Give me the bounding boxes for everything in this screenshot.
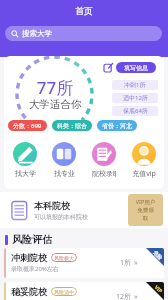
button[interactable]: 找专业 <box>52 142 76 178</box>
button[interactable]: 科类：综合 <box>52 120 92 131</box>
button[interactable]: 稳妥院校 <box>4 282 164 300</box>
staticText: 77所 <box>20 76 90 99</box>
staticText: 危险 <box>152 249 164 261</box>
staticText: 冲刺1所 <box>124 81 146 89</box>
staticText: 首页 <box>0 5 168 16</box>
button[interactable]: 院校录取分 <box>92 142 116 178</box>
staticText: 风险评估 <box>12 233 52 246</box>
staticText: » <box>134 258 138 268</box>
staticText: VIP用户免费领取 <box>135 198 156 222</box>
staticText: 冲刺院校 <box>11 252 47 263</box>
staticText: 省份：河北 <box>102 122 132 130</box>
staticText: 填写信息 <box>124 64 148 72</box>
button[interactable]: 冲刺院校 <box>4 248 164 278</box>
button[interactable]: 冲刺1所 <box>112 80 158 90</box>
staticText: » <box>134 292 138 300</box>
staticText: 12所 <box>116 292 132 300</box>
staticText: 适中12所 <box>123 94 148 102</box>
staticText: 找大学 <box>15 169 36 178</box>
staticText: 1所 <box>120 258 132 268</box>
staticText: 风险极大 <box>54 255 74 261</box>
button[interactable]: 省份：河北 <box>97 120 137 131</box>
staticText: 院校录取分 <box>92 169 116 178</box>
staticText: 风险适中 <box>54 289 74 295</box>
staticText: 科类：综合 <box>57 122 87 130</box>
staticText: 找专业 <box>54 169 75 178</box>
staticText: 大学适合你 <box>16 98 94 111</box>
button[interactable]: 搜索大学 <box>5 26 162 41</box>
staticText: 稳妥院校 <box>11 286 47 297</box>
staticText: 保底64所 <box>123 107 148 115</box>
button[interactable]: 填写信息 <box>116 62 156 73</box>
staticText: 分数：699 <box>13 122 42 130</box>
staticText: 录取概率20%左右 <box>11 265 59 273</box>
button[interactable]: 分数：699 <box>8 120 47 131</box>
staticText: 可以填报的本科院校 <box>34 213 88 221</box>
button[interactable]: 编辑 <box>104 63 113 72</box>
button[interactable]: 保底64所 <box>112 106 158 116</box>
staticText: 本科院校 <box>34 200 70 211</box>
staticText: 搜索大学 <box>22 29 52 38</box>
button[interactable]: 充值vip <box>132 142 156 179</box>
button[interactable]: 本科院校 <box>0 192 168 228</box>
button[interactable]: 适中12所 <box>112 93 158 103</box>
staticText: 充值vip <box>132 169 156 179</box>
button[interactable]: 找大学 <box>13 142 37 178</box>
staticText: VIP <box>153 284 164 295</box>
button[interactable]: VIP用户免费领取 <box>128 194 163 226</box>
